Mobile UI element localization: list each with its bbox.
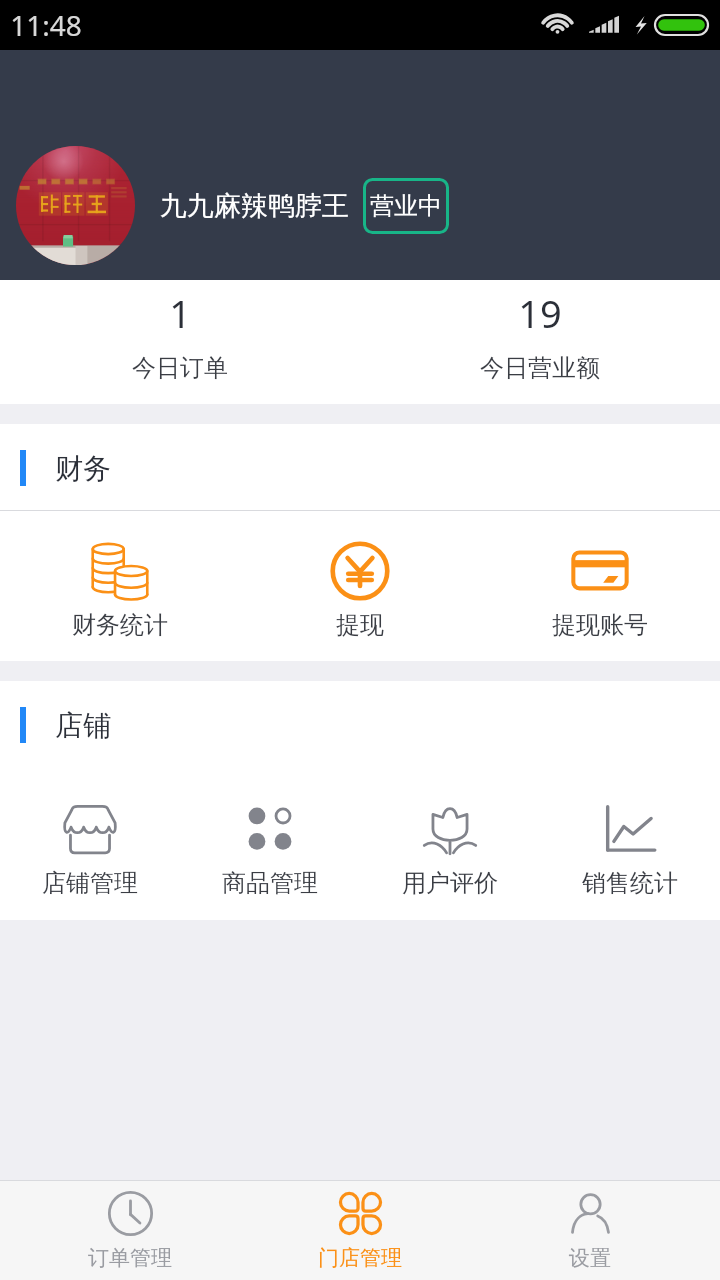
button[interactable]: 1 [0,280,360,404]
staticText: 财务 [55,451,111,486]
staticText: 商品管理 [222,868,318,898]
button[interactable]: 设置 [475,1181,705,1280]
button[interactable]: 订单管理 [15,1181,245,1280]
staticText: 店铺 [55,708,111,743]
staticText: 提现账号 [552,610,648,640]
staticText: 财务统计 [72,610,168,640]
staticText: 九九麻辣鸭脖王 [160,189,349,223]
button[interactable]: 销售统计 [540,768,720,920]
button[interactable]: 提现账号 [480,511,720,661]
staticText: 店铺管理 [42,868,138,898]
staticText: 用户评价 [402,868,498,898]
staticText: 11:48 [10,6,82,44]
staticText: 19 [518,287,562,339]
staticText: 订单管理 [88,1245,172,1271]
staticText: 销售统计 [582,868,678,898]
button[interactable]: 财务统计 [0,511,240,661]
staticText: 营业中 [370,191,442,221]
button[interactable]: 营业中 [363,178,449,234]
button[interactable]: 用户评价 [360,768,540,920]
button[interactable]: Shop logo [16,146,135,265]
staticText: 设置 [569,1245,611,1271]
staticText: 门店管理 [318,1245,402,1271]
staticText: 今日订单 [132,353,228,383]
button[interactable]: 门店管理 [245,1181,475,1280]
button[interactable]: 19 [360,280,720,404]
staticText: 1 [169,287,191,339]
button[interactable]: 店铺管理 [0,768,180,920]
staticText: 提现 [336,610,384,640]
button[interactable]: 商品管理 [180,768,360,920]
staticText: 今日营业额 [480,353,600,383]
button[interactable]: 提现 [240,511,480,661]
